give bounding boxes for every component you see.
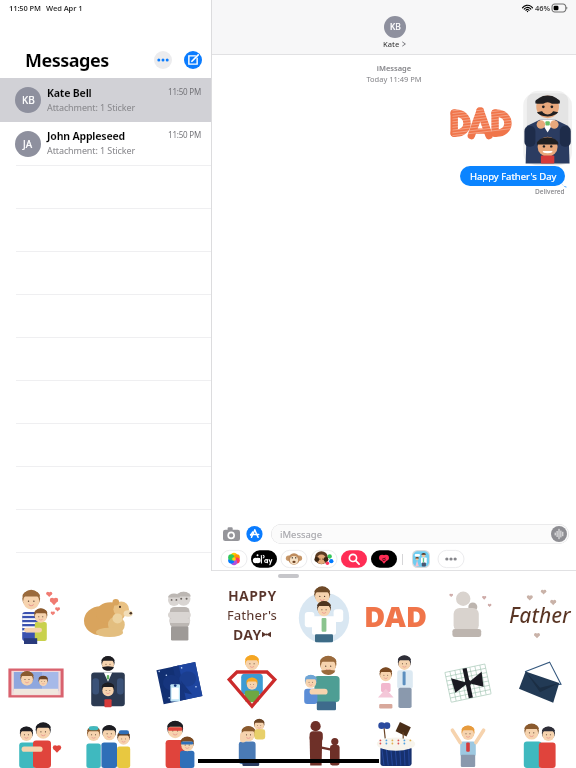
staticText: 11:50 PM bbox=[168, 86, 202, 97]
staticText: Kate Bell bbox=[47, 86, 92, 100]
staticText: Wed Apr 1 bbox=[46, 3, 83, 13]
button[interactable]: Sticker bbox=[72, 649, 144, 717]
staticText: HAPPY bbox=[228, 586, 277, 605]
staticText: Attachment: 1 Sticker bbox=[47, 144, 136, 156]
staticText: Delivered bbox=[535, 187, 565, 196]
button[interactable]: Sticker bbox=[360, 581, 432, 649]
button[interactable]: Sticker bbox=[288, 717, 360, 768]
button[interactable]: Compose new message bbox=[184, 51, 202, 69]
button[interactable]: Sticker bbox=[360, 649, 432, 717]
staticText: 11:50 PM bbox=[168, 129, 202, 140]
staticText: Happy Father's Day bbox=[470, 170, 557, 183]
button[interactable]: Sticker bbox=[216, 717, 288, 768]
button[interactable]: Sticker bbox=[72, 581, 144, 649]
button[interactable]: Dad sticker bbox=[450, 86, 572, 166]
button[interactable]: GIFs bbox=[341, 549, 367, 569]
button[interactable]: Sticker bbox=[0, 717, 72, 768]
button[interactable]: Animoji bbox=[281, 549, 307, 569]
button[interactable]: Sticker bbox=[144, 717, 216, 768]
button[interactable]: Sticker bbox=[288, 581, 360, 649]
staticText: DAY bbox=[233, 625, 262, 644]
button[interactable]: Sticker bbox=[0, 581, 72, 649]
staticText: Kate bbox=[383, 39, 400, 49]
button[interactable]: App Store bbox=[246, 525, 264, 543]
button[interactable]: Sticker bbox=[432, 581, 504, 649]
staticText: John Appleseed bbox=[47, 129, 125, 143]
button[interactable]: Sticker bbox=[504, 581, 576, 649]
button[interactable]: Sticker bbox=[0, 649, 72, 717]
button[interactable]: Sticker bbox=[432, 717, 504, 768]
button[interactable]: Sticker bbox=[360, 717, 432, 768]
button[interactable]: Apple Pay bbox=[251, 549, 277, 569]
button[interactable]: Sticker bbox=[504, 649, 576, 717]
staticText: KB bbox=[390, 21, 401, 33]
staticText: DAD bbox=[364, 596, 428, 635]
button[interactable]: KB bbox=[383, 16, 406, 49]
button[interactable]: Sticker bbox=[432, 649, 504, 717]
staticText: KB bbox=[22, 93, 35, 107]
button[interactable]: Sticker bbox=[288, 649, 360, 717]
staticText: iMessage bbox=[212, 63, 576, 73]
staticText: Today 11:49 PM bbox=[212, 74, 576, 84]
button[interactable]: Sticker bbox=[144, 649, 216, 717]
staticText: 11:50 PM bbox=[9, 3, 41, 13]
staticText: Attachment: 1 Sticker bbox=[47, 101, 136, 113]
button[interactable]: Memoji bbox=[311, 549, 337, 569]
staticText: Messages bbox=[25, 48, 109, 73]
button[interactable]: Sticker bbox=[144, 581, 216, 649]
button[interactable]: Sticker bbox=[216, 649, 288, 717]
staticText: iMessage bbox=[280, 528, 323, 541]
button[interactable]: More apps bbox=[438, 549, 464, 569]
button[interactable]: iMessage bbox=[271, 524, 569, 544]
button[interactable]: Photos bbox=[221, 549, 247, 569]
button[interactable]: Stickers bbox=[408, 549, 434, 569]
button[interactable]: JA bbox=[0, 122, 211, 165]
button[interactable]: Happy Father's Day bbox=[460, 166, 567, 186]
button[interactable]: KB bbox=[0, 78, 211, 122]
button[interactable]: More options bbox=[154, 51, 172, 69]
staticText: Father's bbox=[227, 606, 277, 624]
button[interactable]: Camera bbox=[220, 523, 242, 545]
button[interactable]: Sticker bbox=[72, 717, 144, 768]
button[interactable]: Audio message bbox=[551, 526, 567, 542]
staticText: 46% bbox=[535, 3, 550, 13]
button[interactable]: Digital Touch bbox=[371, 549, 397, 569]
staticText: JA bbox=[23, 137, 33, 151]
staticText: Father bbox=[509, 601, 571, 630]
button[interactable]: Sticker bbox=[216, 581, 288, 649]
button[interactable]: Sticker bbox=[504, 717, 576, 768]
